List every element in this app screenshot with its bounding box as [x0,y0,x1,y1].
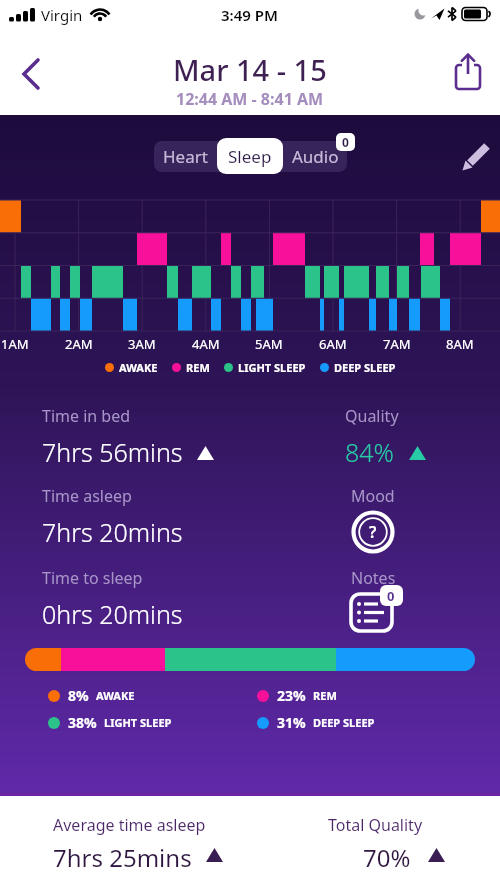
staticText: 8AM [446,335,474,353]
staticText: 0 [342,134,349,150]
staticText: REM [313,688,337,703]
staticText: Sleep [228,145,272,168]
button[interactable] [14,56,50,92]
staticText: Average time asleep [53,814,206,836]
staticText: 23% [277,686,306,705]
staticText: LIGHT SLEEP [238,360,306,375]
staticText: 4AM [192,335,220,353]
staticText: 84% [345,435,394,469]
staticText: Quality [345,405,399,427]
staticText: REM [186,360,210,375]
button[interactable]: Audio [283,141,347,172]
staticText: 0 [387,587,395,605]
staticText: Mar 14 - 15 [173,50,327,89]
staticText: DEEP SLEEP [313,715,375,730]
staticText: Time to sleep [42,567,143,589]
button[interactable] [450,54,486,96]
staticText: LIGHT SLEEP [104,715,172,730]
staticText: 3AM [128,335,156,353]
staticText: 7hrs 25mins [53,841,192,874]
staticText: 31% [277,713,306,732]
staticText: Notes [351,567,396,589]
staticText: Mood [351,485,395,507]
staticText: 38% [68,713,97,732]
staticText: Heart [163,145,208,168]
staticText: Virgin [41,5,83,25]
staticText: 8% [68,686,89,705]
staticText: DEEP SLEEP [334,360,396,375]
staticText: Audio [292,145,339,168]
button[interactable]: ? [351,510,395,554]
staticText: 70% [363,841,411,874]
button[interactable]: Sleep [217,138,283,174]
staticText: AWAKE [119,360,158,375]
staticText: 7hrs 20mins [42,515,183,549]
staticText: Time asleep [42,485,132,507]
staticText: ? [369,521,377,543]
button[interactable]: Heart [154,141,217,172]
staticText: Time in bed [42,405,131,427]
staticText: 2AM [65,335,93,353]
staticText: 5AM [255,335,283,353]
staticText: AWAKE [96,688,135,703]
staticText: 7AM [383,335,411,353]
staticText: 3:49 PM [221,5,278,25]
staticText: 6AM [319,335,347,353]
staticText: 7hrs 56mins [42,435,183,469]
button[interactable]: 0 [348,585,408,639]
staticText: 0hrs 20mins [42,597,183,631]
staticText: Total Quality [328,814,423,836]
staticText: 1AM [1,335,29,353]
staticText: 12:44 AM - 8:41 AM [176,88,324,110]
button[interactable] [459,138,495,174]
